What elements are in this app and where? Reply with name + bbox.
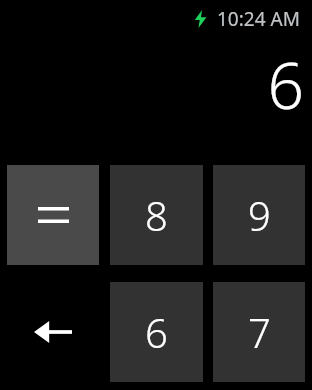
staticText: 8 [145, 188, 168, 242]
staticText: 6 [145, 305, 168, 359]
button[interactable]: Backspace [7, 282, 99, 382]
button[interactable]: 6 [110, 282, 203, 382]
staticText: 7 [248, 305, 271, 359]
button[interactable]: 8 [110, 165, 203, 265]
button[interactable]: 9 [213, 165, 305, 265]
staticText: 6 [267, 41, 304, 128]
button[interactable]: Equals [7, 165, 99, 265]
staticText: 10:24 AM [217, 6, 300, 32]
button[interactable]: 7 [213, 282, 305, 382]
other: Equals [38, 207, 69, 223]
staticText: 9 [248, 188, 271, 242]
